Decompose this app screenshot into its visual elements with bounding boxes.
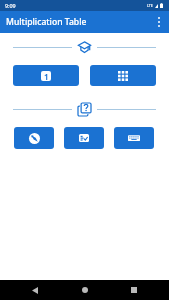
staticText: LTE xyxy=(147,3,153,8)
button[interactable]: More options xyxy=(149,12,169,32)
staticText: 9:09 xyxy=(5,2,16,9)
button[interactable]: Test yourself xyxy=(64,127,104,149)
button[interactable]: Practice xyxy=(14,127,54,149)
button[interactable]: Written input xyxy=(114,127,154,149)
button[interactable]: Home xyxy=(70,280,100,300)
button[interactable]: Table of one xyxy=(13,65,79,86)
staticText: 1 xyxy=(44,71,49,81)
staticText: Multiplication Table xyxy=(6,16,87,28)
button[interactable]: Multiplication grid xyxy=(90,65,156,86)
button[interactable]: Recents xyxy=(119,280,149,300)
button[interactable]: Back xyxy=(20,280,50,300)
